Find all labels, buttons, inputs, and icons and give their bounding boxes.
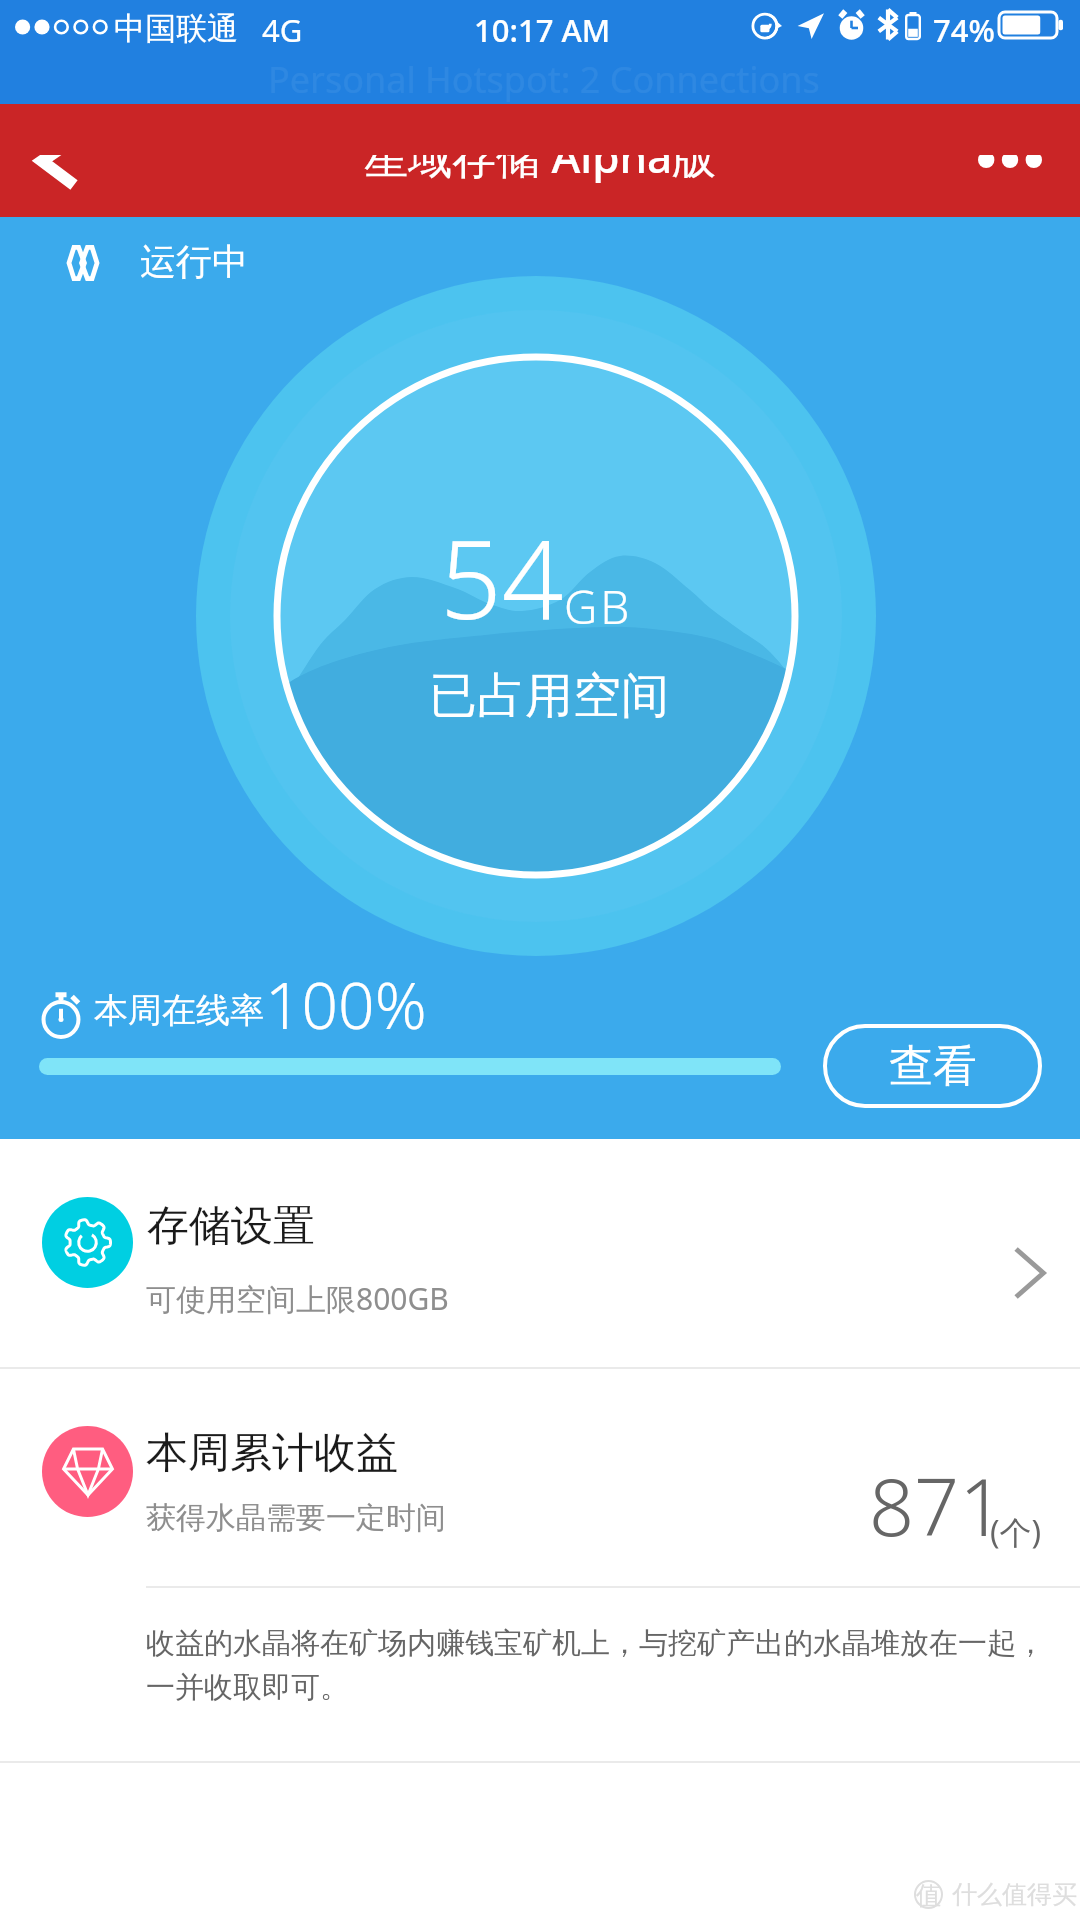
staticText: 871	[869, 1452, 1005, 1560]
staticText: 运行中	[140, 239, 248, 284]
staticText: (个)	[990, 1510, 1042, 1554]
staticText: 本周在线率	[94, 989, 264, 1032]
staticText: 值	[916, 1880, 941, 1909]
staticText: 已占用空间	[429, 666, 669, 726]
staticText: 查看	[889, 1039, 977, 1094]
staticText: 10:17 AM	[474, 9, 611, 51]
staticText: 星域存储 Alpha版	[364, 126, 717, 186]
button[interactable]: Back	[16, 113, 112, 209]
staticText: 什么值得买	[952, 1879, 1077, 1910]
staticText: 获得水晶需要一定时间	[146, 1499, 446, 1537]
button[interactable]: More options	[962, 113, 1058, 209]
staticText: Personal Hotspot: 2 Connections	[268, 55, 820, 104]
staticText: 4G	[262, 9, 303, 51]
staticText: 100%	[265, 961, 427, 1048]
staticText: 可使用空间上限800GB	[146, 1278, 449, 1319]
staticText: 中国联通	[114, 9, 238, 48]
button[interactable]: 存储设置	[0, 1139, 1080, 1367]
staticText: 本周累计收益	[146, 1427, 398, 1480]
staticText: GB	[564, 575, 633, 638]
staticText: 74%	[933, 9, 995, 51]
button[interactable]: 查看	[825, 1026, 1040, 1106]
staticText: 存储设置	[147, 1200, 315, 1253]
staticText: 54	[440, 504, 564, 651]
button[interactable]: 本周累计收益	[0, 1369, 1080, 1586]
staticText: 收益的水晶将在矿场内赚钱宝矿机上，与挖矿产出的水晶堆放在一起， 一并收取即可。	[146, 1625, 1045, 1705]
